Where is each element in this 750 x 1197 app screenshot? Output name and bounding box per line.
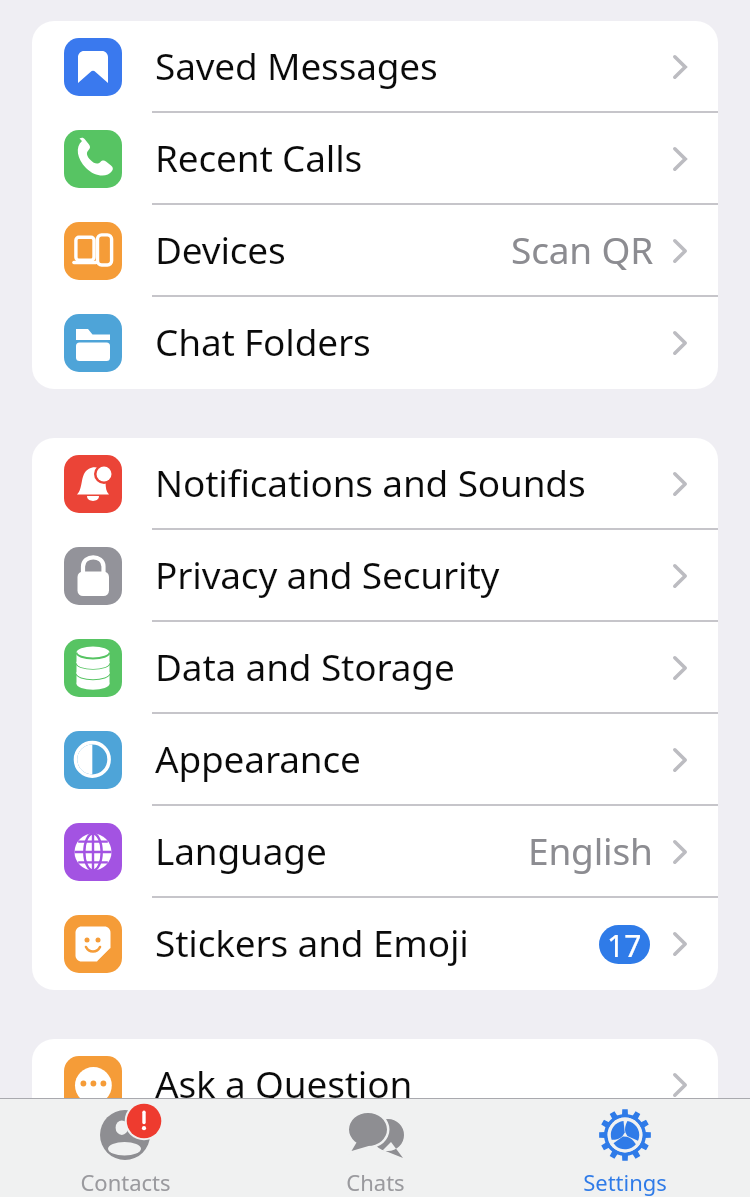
- staticText: Settings: [583, 1167, 667, 1197]
- staticText: Appearance: [155, 733, 361, 783]
- staticText: Stickers and Emoji: [155, 917, 469, 967]
- button[interactable]: Ask a Question: [32, 1039, 718, 1131]
- button[interactable]: Appearance: [32, 714, 718, 806]
- staticText: Language: [155, 825, 327, 875]
- button[interactable]: Privacy and Security: [32, 530, 718, 622]
- staticText: Chat Folders: [155, 316, 371, 366]
- button[interactable]: Saved Messages: [32, 21, 718, 113]
- staticText: 17: [607, 925, 642, 964]
- button[interactable]: Chat Folders: [32, 297, 718, 389]
- button[interactable]: Devices: [32, 205, 718, 297]
- staticText: Data and Storage: [155, 641, 455, 691]
- staticText: Notifications and Sounds: [155, 457, 586, 507]
- button[interactable]: Chats: [250, 1099, 500, 1197]
- staticText: Scan QR: [511, 224, 653, 274]
- staticText: Contacts: [80, 1167, 171, 1197]
- staticText: Recent Calls: [155, 132, 363, 182]
- button[interactable]: Data and Storage: [32, 622, 718, 714]
- button[interactable]: Stickers and Emoji: [32, 898, 718, 990]
- staticText: Ask a Question: [155, 1058, 413, 1108]
- button[interactable]: Notifications and Sounds: [32, 438, 718, 530]
- button[interactable]: Settings: [500, 1099, 750, 1197]
- button[interactable]: Recent Calls: [32, 113, 718, 205]
- staticText: Privacy and Security: [155, 549, 500, 599]
- button[interactable]: Language: [32, 806, 718, 898]
- staticText: English: [528, 825, 653, 875]
- button[interactable]: Contacts: [0, 1099, 250, 1197]
- staticText: Chats: [346, 1167, 405, 1197]
- staticText: Saved Messages: [155, 40, 438, 90]
- staticText: Devices: [155, 224, 286, 274]
